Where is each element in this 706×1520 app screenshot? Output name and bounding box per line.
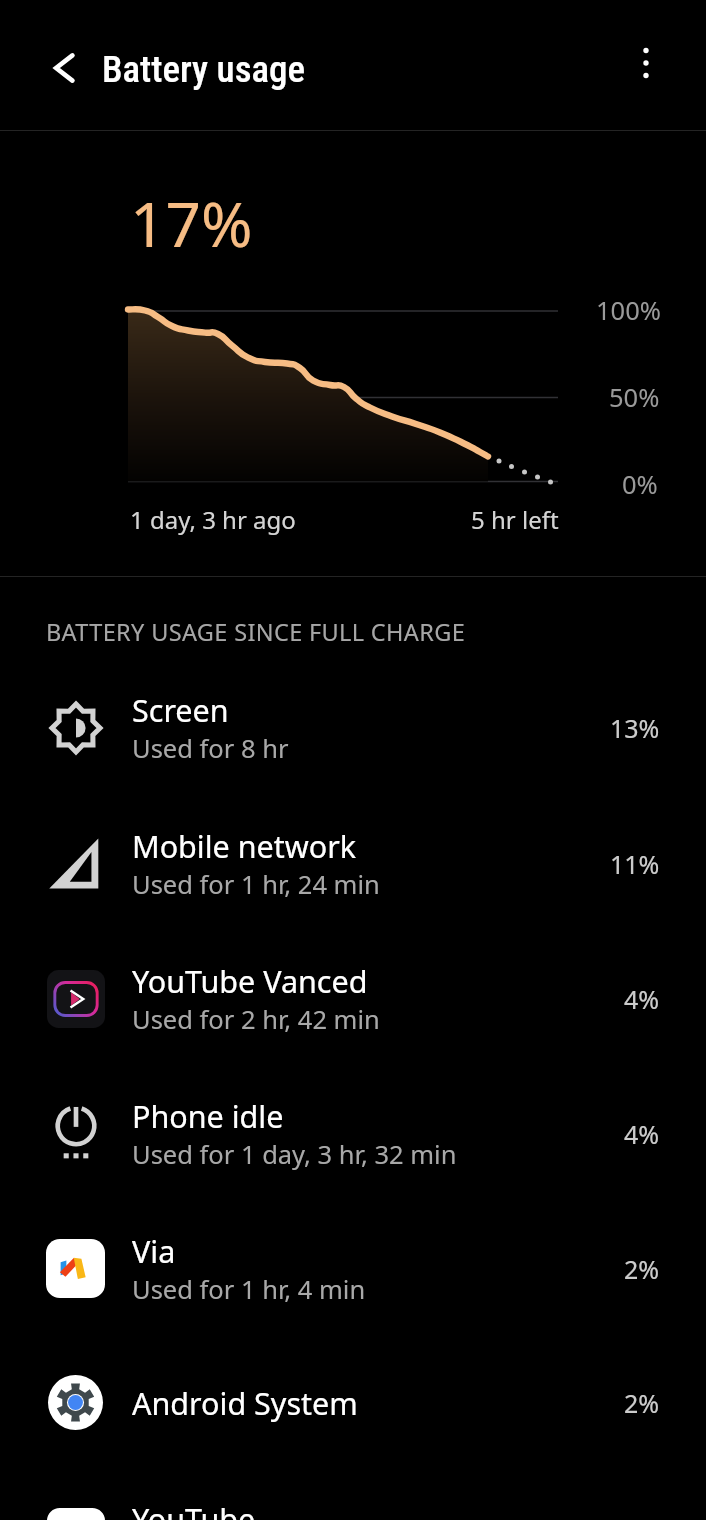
staticText: 11% xyxy=(610,847,660,881)
staticText: Used for 8 hr xyxy=(132,731,289,766)
button[interactable]: YouTube Vanced xyxy=(0,931,706,1066)
button[interactable]: Screen xyxy=(0,660,706,795)
staticText: Used for 1 hr, 4 min xyxy=(132,1272,366,1307)
staticText: Phone idle xyxy=(132,1095,284,1137)
staticText: Android System xyxy=(132,1382,358,1424)
staticText: Mobile network xyxy=(132,825,357,867)
staticText: 50% xyxy=(609,380,660,415)
staticText: 0% xyxy=(622,467,658,502)
button[interactable]: Via xyxy=(0,1201,706,1336)
staticText: 13% xyxy=(610,711,660,745)
staticText: 1 day, 3 hr ago xyxy=(130,503,296,536)
button[interactable]: Mobile network xyxy=(0,796,706,931)
button[interactable]: Phone idle xyxy=(0,1066,706,1201)
staticText: 17% xyxy=(130,181,253,265)
staticText: 4% xyxy=(624,982,660,1016)
button[interactable]: YouTube xyxy=(0,1469,706,1520)
staticText: Used for 2 hr, 42 min xyxy=(132,1002,380,1037)
staticText: 2% xyxy=(624,1386,660,1420)
staticText: BATTERY USAGE SINCE FULL CHARGE xyxy=(46,616,466,648)
staticText: YouTube xyxy=(132,1498,256,1520)
staticText: 5 hr left xyxy=(471,503,559,536)
staticText: YouTube Vanced xyxy=(132,960,368,1002)
staticText: Battery usage xyxy=(102,48,306,91)
button[interactable]: Android System xyxy=(0,1336,706,1469)
staticText: 2% xyxy=(624,1252,660,1286)
staticText: Via xyxy=(132,1230,176,1272)
staticText: Used for 1 hr, 24 min xyxy=(132,867,380,902)
staticText: Screen xyxy=(132,689,229,731)
staticText: 100% xyxy=(596,293,661,328)
staticText: Used for 1 day, 3 hr, 32 min xyxy=(132,1137,457,1172)
button[interactable]: Back xyxy=(30,44,98,92)
button[interactable]: More options xyxy=(618,35,674,91)
staticText: 4% xyxy=(624,1117,660,1151)
